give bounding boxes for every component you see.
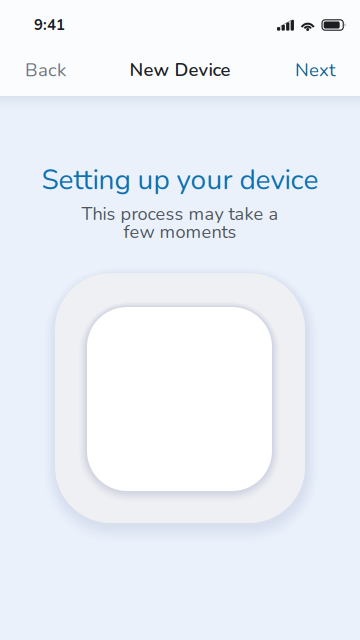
staticText: Next — [295, 57, 336, 83]
staticText: Setting up your device — [41, 161, 318, 199]
staticText: This process may take a — [81, 202, 278, 226]
staticText: few moments — [123, 220, 236, 244]
staticText: Back — [25, 57, 66, 83]
button[interactable]: Next — [271, 44, 360, 96]
staticText: 9:41 — [34, 15, 65, 35]
staticText: New Device — [129, 57, 230, 83]
button[interactable]: Back — [0, 44, 91, 96]
